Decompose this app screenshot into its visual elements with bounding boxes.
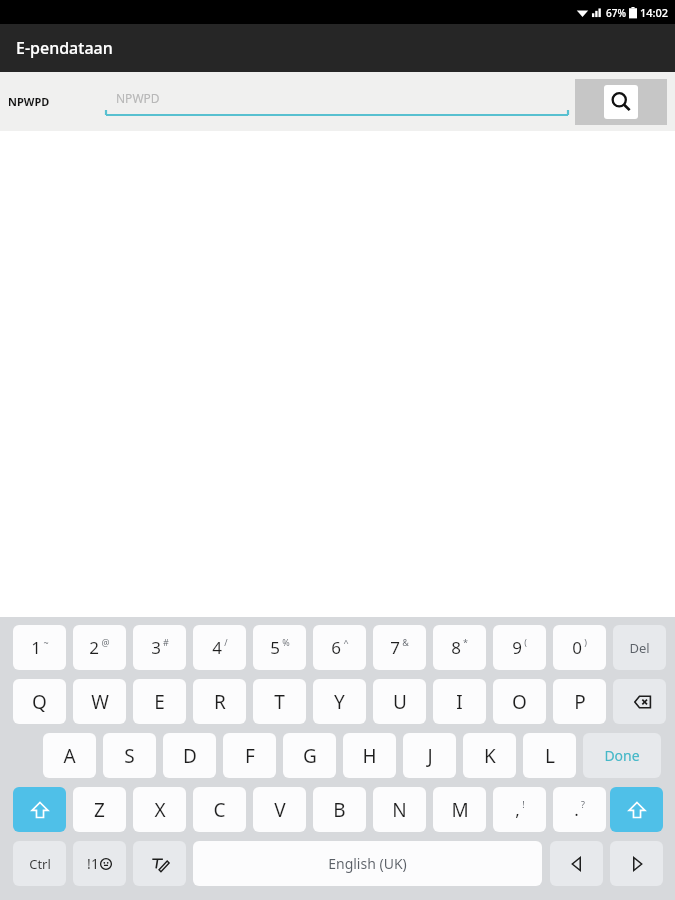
button[interactable]: C xyxy=(193,787,246,832)
button[interactable]: , xyxy=(493,787,546,832)
button[interactable]: Z xyxy=(73,787,126,832)
button[interactable]: 3 xyxy=(133,625,186,670)
button[interactable]: P xyxy=(553,679,606,724)
button[interactable]: L xyxy=(523,733,576,778)
staticText: ( xyxy=(524,636,527,648)
button[interactable]: 9 xyxy=(493,625,546,670)
staticText: C xyxy=(213,797,226,823)
button[interactable]: B xyxy=(313,787,366,832)
staticText: # xyxy=(163,636,169,648)
staticText: I xyxy=(456,689,463,715)
button[interactable]: Handwriting xyxy=(133,841,186,886)
staticText: , xyxy=(515,798,520,821)
staticText: Y xyxy=(334,689,345,715)
button[interactable]: 7 xyxy=(373,625,426,670)
staticText: P xyxy=(574,689,586,715)
staticText: A xyxy=(63,743,76,769)
staticText: J xyxy=(427,743,433,769)
staticText: 4 xyxy=(212,636,222,659)
staticText: ? xyxy=(581,798,585,810)
button[interactable]: V xyxy=(253,787,306,832)
staticText: % xyxy=(282,636,290,648)
button[interactable]: Del xyxy=(613,625,666,670)
staticText: E xyxy=(154,689,165,715)
staticText: * xyxy=(463,636,468,648)
staticText: / xyxy=(224,636,228,648)
button[interactable]: 6 xyxy=(313,625,366,670)
staticText: 14:02 xyxy=(640,5,669,20)
staticText: O xyxy=(512,689,527,715)
staticText: 1 xyxy=(31,636,41,659)
staticText: @ xyxy=(101,636,110,648)
button[interactable]: . xyxy=(553,787,606,832)
button[interactable]: S xyxy=(103,733,156,778)
staticText: Del xyxy=(629,639,650,657)
staticText: Ctrl xyxy=(29,855,51,873)
button[interactable]: M xyxy=(433,787,486,832)
button[interactable]: T xyxy=(253,679,306,724)
staticText: 0 xyxy=(572,636,582,659)
button[interactable]: 5 xyxy=(253,625,306,670)
button[interactable]: 0 xyxy=(553,625,606,670)
staticText: R xyxy=(214,689,226,715)
button[interactable]: Ctrl xyxy=(13,841,66,886)
staticText: B xyxy=(333,797,346,823)
button[interactable]: G xyxy=(283,733,336,778)
staticText: Done xyxy=(604,746,640,765)
button[interactable]: O xyxy=(493,679,546,724)
staticText: !1 xyxy=(87,854,99,873)
staticText: U xyxy=(393,689,407,715)
button[interactable]: J xyxy=(403,733,456,778)
button[interactable]: 2 xyxy=(73,625,126,670)
staticText: K xyxy=(484,743,496,769)
button[interactable]: R xyxy=(193,679,246,724)
button[interactable]: A xyxy=(43,733,96,778)
staticText: 67% xyxy=(606,6,626,20)
button[interactable]: K xyxy=(463,733,516,778)
staticText: F xyxy=(245,743,255,769)
button[interactable]: Y xyxy=(313,679,366,724)
staticText: H xyxy=(362,743,377,769)
button[interactable]: 4 xyxy=(193,625,246,670)
staticText: G xyxy=(303,743,317,769)
button[interactable]: Shift xyxy=(610,787,663,832)
button[interactable]: Move cursor right xyxy=(610,841,663,886)
staticText: 9 xyxy=(512,636,522,659)
staticText: T xyxy=(274,689,285,715)
staticText: 2 xyxy=(89,636,99,659)
button[interactable]: H xyxy=(343,733,396,778)
button[interactable]: 8 xyxy=(433,625,486,670)
staticText: 8 xyxy=(451,636,461,659)
staticText: S xyxy=(124,743,135,769)
button[interactable]: Q xyxy=(13,679,66,724)
button[interactable]: Search xyxy=(575,79,667,125)
button[interactable]: F xyxy=(223,733,276,778)
button[interactable]: Shift xyxy=(13,787,66,832)
staticText: ) xyxy=(584,636,587,648)
staticText: English (UK) xyxy=(328,854,407,873)
button[interactable]: E xyxy=(133,679,186,724)
button[interactable]: 1 xyxy=(13,625,66,670)
button[interactable]: W xyxy=(73,679,126,724)
staticText: & xyxy=(402,636,409,648)
button[interactable]: N xyxy=(373,787,426,832)
staticText: ! xyxy=(522,798,525,810)
staticText: M xyxy=(451,797,469,823)
button[interactable]: English (UK) xyxy=(193,841,542,886)
button[interactable]: Done xyxy=(583,733,661,778)
button[interactable]: Symbols xyxy=(73,841,126,886)
staticText: ~ xyxy=(43,636,49,648)
staticText: NPWPD xyxy=(8,94,50,109)
staticText: 6 xyxy=(331,636,341,659)
button[interactable]: Backspace xyxy=(613,679,666,724)
staticText: V xyxy=(274,797,286,823)
button[interactable]: D xyxy=(163,733,216,778)
staticText: 3 xyxy=(151,636,161,659)
button[interactable]: U xyxy=(373,679,426,724)
staticText: N xyxy=(392,797,407,823)
button[interactable]: X xyxy=(133,787,186,832)
button[interactable]: I xyxy=(433,679,486,724)
button[interactable]: NPWPD xyxy=(106,88,568,120)
staticText: Q xyxy=(32,689,47,715)
button[interactable]: Move cursor left xyxy=(550,841,603,886)
